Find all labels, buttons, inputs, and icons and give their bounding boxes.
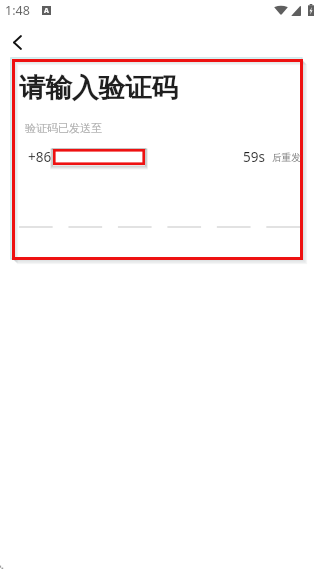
staticText: +86 bbox=[28, 148, 52, 166]
staticText: 1:48 bbox=[5, 2, 30, 19]
staticText: 验证码已发送至 bbox=[25, 121, 102, 135]
button[interactable]: 59s bbox=[243, 148, 301, 166]
staticText: A bbox=[44, 6, 49, 15]
button[interactable]: Back bbox=[0, 25, 34, 59]
staticText: 后重发 bbox=[272, 152, 301, 164]
button[interactable]: Phone number bbox=[53, 149, 145, 165]
staticText: 59s bbox=[243, 148, 265, 166]
staticText: 请输入验证码 bbox=[19, 71, 178, 104]
